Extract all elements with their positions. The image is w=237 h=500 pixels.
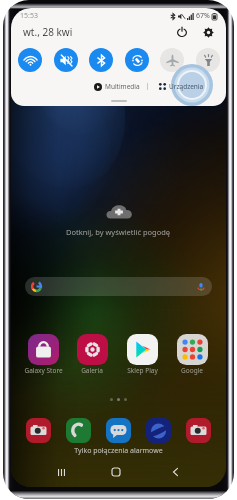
button[interactable]: Recent apps — [44, 464, 78, 480]
button[interactable]: Multimedia — [94, 82, 140, 91]
button[interactable]: Urządzenia — [159, 82, 204, 91]
staticText: wt., 28 kwi — [23, 25, 73, 39]
button[interactable]: Flashlight — [196, 48, 220, 72]
button[interactable]: Dotknij, by wyświetlić pogodę — [11, 202, 226, 237]
button[interactable]: Wi-Fi — [18, 48, 42, 72]
staticText: Multimedia — [105, 82, 140, 91]
staticText: Dotknij, by wyświetlić pogodę — [66, 227, 171, 237]
staticText: Urządzenia — [169, 82, 204, 91]
button[interactable]: Sound off — [54, 48, 78, 72]
button[interactable]: Back — [158, 464, 192, 480]
staticText: Sklep Play — [127, 366, 158, 375]
button[interactable]: Camera — [181, 416, 215, 444]
button[interactable]: Messages — [101, 416, 135, 444]
button[interactable]: Bluetooth — [89, 48, 113, 72]
button[interactable]: Auto rotate — [125, 48, 149, 72]
button[interactable]: Airplane mode — [160, 48, 184, 72]
staticText: Google — [181, 366, 203, 375]
button[interactable]: Power — [173, 23, 191, 41]
button[interactable]: Galeria — [68, 334, 116, 375]
staticText: 15:53 — [20, 11, 38, 21]
button[interactable]: Galaxy Store — [19, 334, 67, 375]
button[interactable]: Camera — [21, 416, 55, 444]
staticText: Galaxy Store — [24, 366, 63, 375]
staticText: Galeria — [81, 366, 103, 375]
button[interactable]: Home — [99, 464, 133, 480]
button[interactable]: Phone — [61, 416, 95, 444]
button[interactable]: Internet — [141, 416, 175, 444]
other: Voice search — [196, 282, 206, 292]
button[interactable]: Settings — [199, 23, 217, 41]
button[interactable]: Voice search — [25, 277, 212, 296]
staticText: Tylko połączenia alarmowe — [11, 446, 226, 456]
staticText: 67% — [196, 11, 210, 21]
button[interactable]: Google — [168, 334, 216, 375]
button[interactable]: Sklep Play — [118, 334, 166, 375]
